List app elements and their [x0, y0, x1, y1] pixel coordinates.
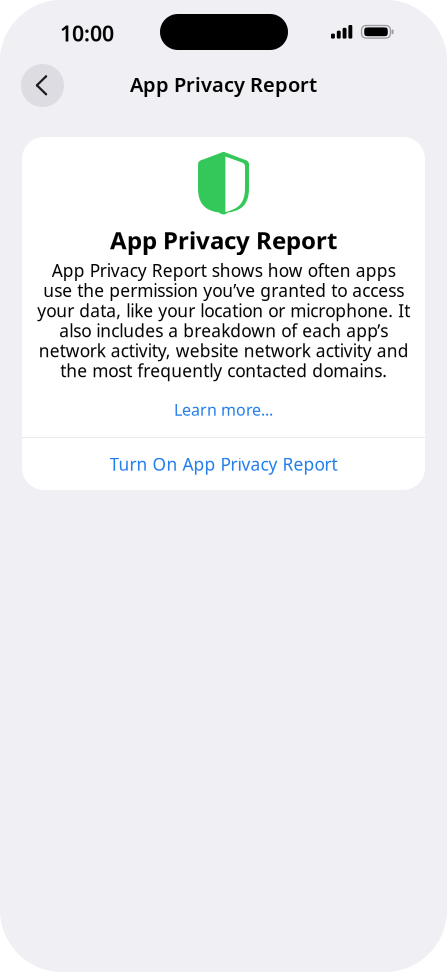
button[interactable]: Back: [21, 64, 64, 107]
staticText: App Privacy Report: [110, 224, 337, 256]
staticText: App Privacy Report shows how often apps …: [37, 259, 410, 382]
staticText: Learn more...: [174, 399, 273, 420]
staticText: App Privacy Report: [130, 71, 317, 98]
button[interactable]: Turn On App Privacy Report: [22, 438, 425, 490]
staticText: 10:00: [60, 19, 114, 47]
button[interactable]: Learn more...: [22, 382, 425, 437]
staticText: Turn On App Privacy Report: [109, 452, 337, 475]
